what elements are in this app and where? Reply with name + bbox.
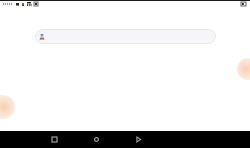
button[interactable]: Search [35,29,216,44]
button[interactable]: Back [130,131,147,148]
button[interactable]: Home [88,131,105,148]
button[interactable]: Recent apps [46,131,63,148]
